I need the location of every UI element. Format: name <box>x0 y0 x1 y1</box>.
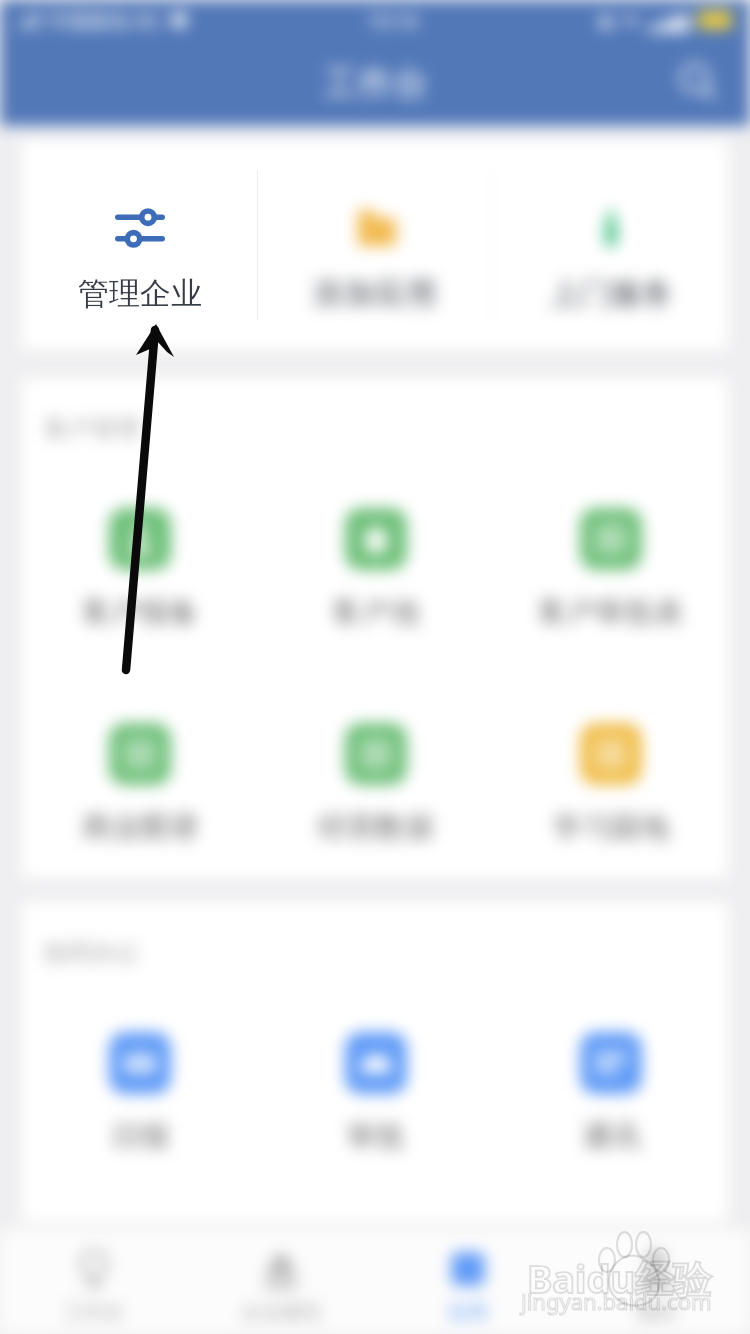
button[interactable]: 客户审批表 <box>493 508 728 631</box>
staticText: 中国移动 4G <box>48 7 160 34</box>
button[interactable]: 我的 <box>562 1230 750 1334</box>
button[interactable]: 企业通讯 <box>187 1230 374 1334</box>
button[interactable]: 商业图谱 <box>22 723 258 846</box>
staticText: 商业图谱 <box>82 809 198 846</box>
staticText: ◉ ✉ ▂▄▆ <box>598 8 690 33</box>
button[interactable]: 添加应用 <box>257 140 492 350</box>
staticText: 10:16 <box>367 7 419 34</box>
staticText: 客户管理 <box>44 414 140 444</box>
staticText: 管理企业 <box>78 274 202 313</box>
staticText: 客户审批表 <box>538 594 683 631</box>
button[interactable]: 管理企业 <box>22 140 256 350</box>
staticText: 通讯 <box>582 1118 640 1155</box>
staticText: 日报 <box>111 1118 169 1155</box>
staticText: 经营数据 <box>318 809 434 846</box>
staticText: 企业通讯 <box>241 1300 321 1325</box>
staticText: 学习园地 <box>553 809 669 846</box>
staticText: 添加应用 <box>313 274 437 313</box>
staticText: 工作台 <box>323 61 428 105</box>
button[interactable]: Search <box>670 55 726 111</box>
staticText: 协同办公 <box>44 938 140 968</box>
button[interactable]: 客户报备 <box>22 508 258 631</box>
button[interactable]: 工作台 <box>0 1230 187 1334</box>
button[interactable]: 通讯 <box>493 1032 728 1155</box>
button[interactable]: 客户池 <box>258 508 493 631</box>
button[interactable]: 管理企业 <box>22 140 257 350</box>
staticText: 审批 <box>347 1118 405 1155</box>
staticText: 客户池 <box>332 594 419 631</box>
button[interactable]: 经营数据 <box>258 723 493 846</box>
staticText: 工作台 <box>64 1300 124 1325</box>
staticText: 客户报备 <box>82 594 198 631</box>
button[interactable]: 审批 <box>258 1032 493 1155</box>
button[interactable]: 日报 <box>22 1032 258 1155</box>
staticText: 我的 <box>636 1300 676 1325</box>
button[interactable]: 应用 <box>374 1230 562 1334</box>
staticText: 管理企业 <box>77 274 201 313</box>
button[interactable]: 学习园地 <box>493 723 728 846</box>
button[interactable]: 上门服务 <box>493 140 728 350</box>
staticText: 上门服务 <box>549 274 673 313</box>
staticText: 应用 <box>448 1300 488 1325</box>
